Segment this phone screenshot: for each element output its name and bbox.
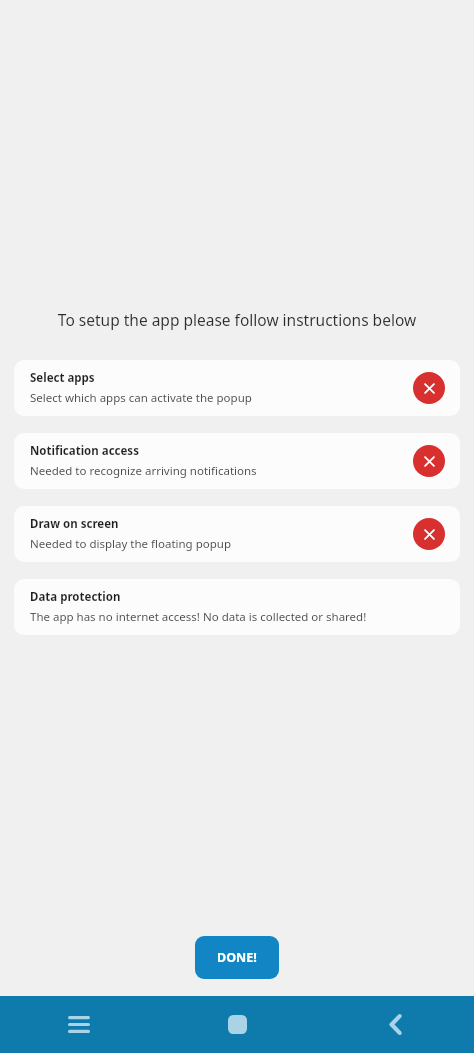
button[interactable]: Home xyxy=(158,996,316,1053)
staticText: Data protection xyxy=(30,589,121,605)
staticText: DONE! xyxy=(217,949,257,966)
staticText: Draw on screen xyxy=(30,516,119,532)
button[interactable]: Back xyxy=(316,996,474,1053)
button[interactable]: Permission not granted xyxy=(413,445,445,477)
button[interactable]: DONE! xyxy=(195,936,279,979)
staticText: Needed to recognize arriving notificatio… xyxy=(30,463,257,479)
staticText: Select apps xyxy=(30,370,95,386)
button[interactable]: Data protection xyxy=(14,579,460,635)
button[interactable]: Notification access xyxy=(14,433,460,489)
staticText: To setup the app please follow instructi… xyxy=(0,309,474,330)
staticText: The app has no internet access! No data … xyxy=(30,609,367,625)
button[interactable]: Recent apps xyxy=(0,996,158,1053)
staticText: Notification access xyxy=(30,443,139,459)
staticText: Select which apps can activate the popup xyxy=(30,390,252,406)
staticText: Needed to display the floating popup xyxy=(30,536,231,552)
button[interactable]: Permission not granted xyxy=(413,518,445,550)
button[interactable]: Select apps xyxy=(14,360,460,416)
button[interactable]: Draw on screen xyxy=(14,506,460,562)
button[interactable]: Permission not granted xyxy=(413,372,445,404)
